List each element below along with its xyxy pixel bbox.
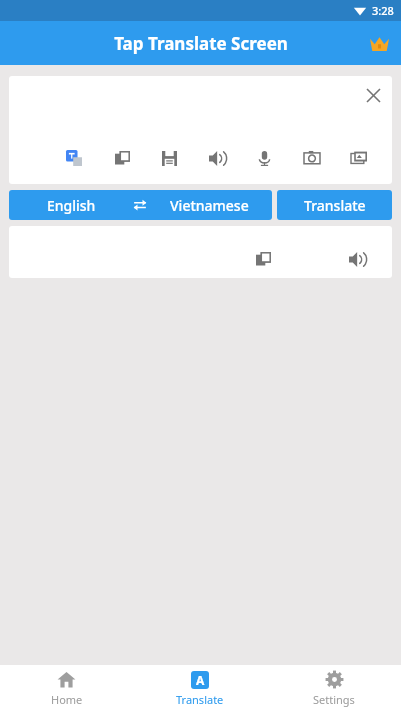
button[interactable]: Save bbox=[156, 145, 182, 171]
button[interactable]: Voice input bbox=[251, 145, 277, 171]
button[interactable]: English bbox=[9, 190, 272, 220]
staticText: Tap Translate Screen bbox=[114, 32, 288, 55]
staticText: Home bbox=[51, 692, 83, 707]
staticText: English bbox=[47, 196, 96, 215]
button[interactable]: A bbox=[133, 665, 267, 712]
staticText: 3:28 bbox=[372, 3, 394, 18]
staticText: Settings bbox=[313, 692, 355, 707]
button[interactable]: Home bbox=[0, 665, 133, 712]
button[interactable]: Scan image bbox=[346, 145, 372, 171]
button[interactable]: Translate bbox=[277, 190, 392, 220]
staticText: Vietnamese bbox=[170, 196, 249, 215]
button[interactable]: Translate with Google bbox=[61, 145, 87, 171]
staticText: Translate bbox=[176, 692, 224, 707]
button[interactable]: Camera bbox=[299, 145, 325, 171]
button[interactable]: Premium bbox=[357, 21, 401, 65]
button[interactable]: Settings bbox=[267, 665, 401, 712]
button[interactable]: Speak bbox=[204, 145, 230, 171]
button[interactable]: Close bbox=[354, 76, 392, 114]
staticText: A bbox=[196, 672, 205, 688]
button[interactable]: Copy bbox=[109, 145, 135, 171]
staticText: Translate bbox=[304, 196, 366, 215]
button[interactable]: Copy translation bbox=[250, 246, 276, 272]
button[interactable]: Speak translation bbox=[344, 246, 370, 272]
